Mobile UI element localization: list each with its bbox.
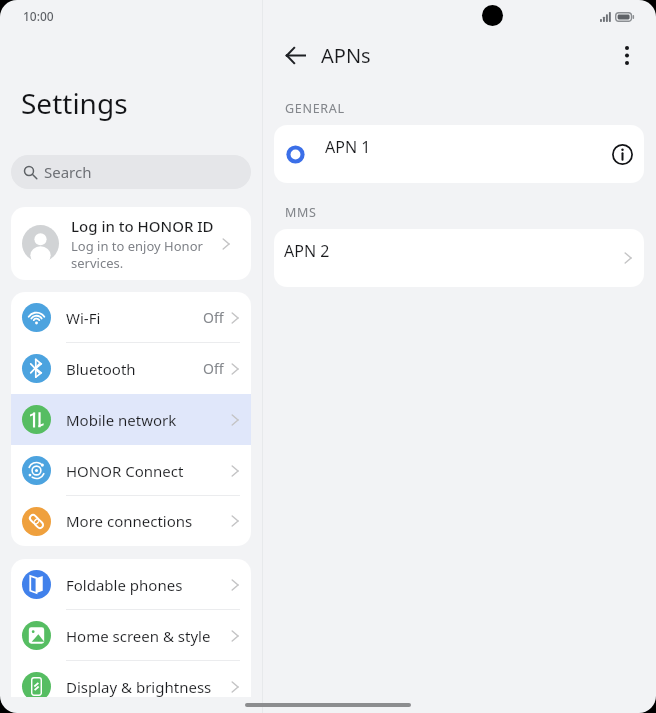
staticText: Search [44,162,92,182]
staticText: Home screen & style [66,626,231,646]
staticText: Settings [21,84,128,122]
staticText: APN 1 [325,136,371,158]
button[interactable]: Foldable phones [11,559,251,610]
staticText: Display & brightness [66,677,231,697]
staticText: HONOR Connect [66,461,231,481]
button[interactable]: Home screen & style [11,610,251,661]
staticText: Off [203,308,224,327]
button[interactable]: Wi-Fi [11,292,251,343]
button[interactable]: Mobile network [11,394,251,445]
button[interactable]: Search [11,155,251,189]
staticText: Off [203,359,224,378]
button[interactable]: Back [277,37,313,73]
staticText: APN 2 [284,240,330,262]
staticText: APNs [321,42,371,69]
staticText: Log in to HONOR ID [71,216,214,236]
button[interactable]: More connections [11,496,251,546]
staticText: Log in to enjoy Honor services. [71,237,222,272]
button[interactable]: Log in to HONOR ID [11,207,251,280]
staticText: GENERAL [285,100,345,117]
button[interactable]: More options [610,38,644,72]
staticText: Bluetooth [66,359,203,379]
button[interactable]: Bluetooth [11,343,251,394]
staticText: Wi-Fi [66,308,203,328]
button[interactable]: APN 1 details [605,137,639,171]
staticText: Foldable phones [66,575,231,595]
staticText: Mobile network [66,410,231,430]
button[interactable]: HONOR Connect [11,445,251,496]
button[interactable]: APN 1 [274,125,644,183]
staticText: MMS [285,204,317,221]
staticText: 10:00 [23,8,54,24]
button[interactable]: APN 2 [274,229,644,287]
staticText: More connections [66,511,231,531]
button[interactable]: Display & brightness [11,661,251,697]
